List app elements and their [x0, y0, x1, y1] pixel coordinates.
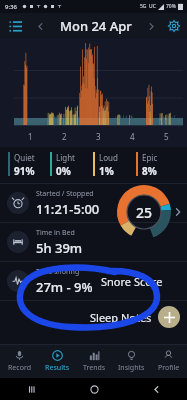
staticText: 1	[28, 131, 33, 142]
button[interactable]: Epic	[136, 152, 179, 178]
staticText: 27m - 9%	[36, 278, 93, 296]
staticText: Mon 24 Apr	[60, 17, 132, 35]
staticText: 9:36	[5, 3, 17, 11]
staticText: Light	[56, 152, 76, 163]
staticText: 8%	[142, 164, 157, 178]
staticText: 70%	[166, 3, 176, 10]
staticText: 3	[96, 131, 101, 142]
button[interactable]: Trends	[76, 344, 113, 378]
button[interactable]: Settings	[161, 13, 187, 39]
button[interactable]: Mon 24 Apr	[50, 13, 141, 39]
staticText: Profile	[158, 363, 180, 373]
button[interactable]: Started / Stopped	[0, 184, 113, 222]
button[interactable]: Profile	[150, 344, 187, 378]
staticText: Loud	[99, 152, 118, 163]
staticText: 1%	[99, 164, 114, 178]
staticText: Trends	[83, 363, 106, 373]
button[interactable]: Next day	[141, 13, 161, 39]
staticText: Snore Score	[101, 274, 163, 289]
staticText: Time snoring	[36, 267, 80, 277]
button[interactable]: Quiet	[8, 152, 50, 178]
button[interactable]: Results	[38, 344, 76, 378]
button[interactable]: Recents	[0, 378, 63, 400]
staticText: Started / Stopped	[36, 189, 94, 199]
staticText: Epic	[142, 152, 158, 163]
staticText: 25	[136, 203, 153, 222]
staticText: 5	[164, 131, 169, 142]
staticText: Results	[45, 363, 70, 373]
button[interactable]: Menu	[0, 13, 30, 39]
staticText: 11:21-5:00	[36, 200, 100, 218]
button[interactable]: Light	[50, 152, 93, 178]
staticText: UC	[149, 3, 156, 10]
staticText: 5h 39m	[36, 239, 83, 257]
button[interactable]: Back	[125, 378, 187, 400]
button[interactable]: Sleep Notes	[90, 310, 152, 325]
button[interactable]: Record	[0, 344, 38, 378]
staticText: 0%	[56, 164, 71, 178]
staticText: Quiet	[14, 152, 35, 163]
button[interactable]: Insights	[113, 344, 150, 378]
button[interactable]: Previous day	[30, 13, 50, 39]
staticText: 4	[130, 131, 135, 142]
staticText: Time in Bed	[36, 228, 75, 238]
staticText: 2	[62, 131, 67, 142]
button[interactable]: Time snoring	[0, 262, 101, 300]
button[interactable]: Snore Score	[101, 262, 187, 300]
staticText: Insights	[118, 363, 145, 373]
button[interactable]: Time in Bed	[0, 223, 113, 261]
staticText: 5G	[140, 3, 147, 10]
button[interactable]: Home	[63, 378, 125, 400]
staticText: Record	[8, 363, 31, 373]
button[interactable]: Loud	[93, 152, 136, 178]
staticText: 91%	[14, 164, 35, 178]
button[interactable]: Add sleep note	[158, 306, 180, 328]
button[interactable]: Sleep score 25	[113, 184, 187, 222]
staticText: Sleep Notes	[90, 310, 152, 325]
